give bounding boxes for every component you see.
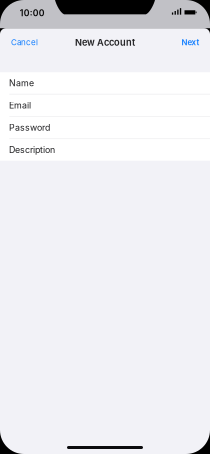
staticText: Name — [9, 78, 34, 88]
staticText: Next — [181, 38, 199, 47]
button[interactable]: Password — [0, 117, 210, 138]
button[interactable]: Email — [0, 94, 210, 116]
staticText: Password — [9, 122, 50, 133]
staticText: Description — [9, 145, 55, 155]
button[interactable]: Next — [177, 33, 203, 52]
button[interactable]: Name — [0, 72, 210, 94]
staticText: 10:00 — [20, 8, 45, 18]
staticText: New Account — [75, 37, 135, 48]
staticText: Cancel — [11, 38, 38, 47]
staticText: Email — [9, 100, 31, 111]
button[interactable]: Description — [0, 139, 210, 161]
button[interactable]: Cancel — [7, 33, 42, 52]
